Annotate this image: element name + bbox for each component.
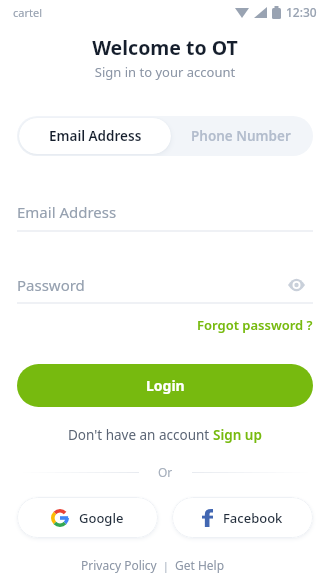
staticText: Or: [158, 464, 173, 480]
staticText: 12:30: [286, 4, 317, 20]
staticText: Sign in to your account: [0, 63, 330, 81]
staticText: Google: [79, 509, 124, 527]
button[interactable]: Don't have an account: [68, 426, 262, 444]
staticText: Sign up: [213, 426, 262, 444]
button[interactable]: Forgot password ?: [197, 316, 313, 334]
button[interactable]: Privacy Policy: [81, 557, 157, 573]
staticText: |: [157, 558, 175, 573]
button[interactable]: Facebook: [172, 497, 313, 538]
staticText: Password: [17, 275, 85, 295]
button[interactable]: Login: [17, 364, 313, 407]
button[interactable]: Email Address: [19, 118, 171, 154]
staticText: Email Address: [17, 202, 117, 222]
staticText: Phone Number: [191, 127, 291, 145]
staticText: Login: [146, 376, 185, 395]
button[interactable]: Get Help: [175, 557, 225, 573]
staticText: cartel: [13, 5, 43, 20]
button[interactable]: Phone Number: [171, 118, 311, 154]
staticText: Facebook: [223, 509, 283, 527]
staticText: Don't have an account: [68, 426, 213, 444]
staticText: Welcome to OT: [0, 34, 330, 61]
staticText: Email Address: [49, 127, 142, 145]
button[interactable]: Google: [17, 497, 158, 538]
